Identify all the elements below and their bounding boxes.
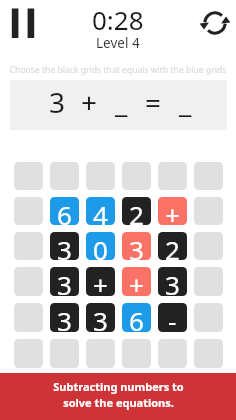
staticText: Choose the black grids that equals with … — [0, 64, 236, 76]
button[interactable] — [14, 197, 43, 225]
staticText: 3 — [57, 303, 72, 332]
button[interactable]: - — [158, 303, 187, 332]
button[interactable] — [122, 339, 151, 368]
staticText: - — [168, 303, 177, 332]
staticText: + — [93, 267, 108, 296]
staticText: + — [81, 83, 98, 121]
button[interactable] — [86, 339, 115, 368]
button[interactable] — [194, 162, 223, 190]
button[interactable] — [14, 267, 43, 296]
button[interactable]: 3 — [50, 232, 79, 260]
button[interactable]: 3 — [122, 232, 151, 260]
button[interactable]: 2 — [158, 232, 187, 260]
staticText: + — [165, 197, 180, 225]
button[interactable]: 0 — [86, 232, 115, 260]
staticText: 0 — [93, 232, 108, 260]
button[interactable] — [14, 303, 43, 332]
button[interactable]: Restart — [199, 7, 231, 39]
staticText: _ — [115, 83, 128, 121]
staticText: 3 — [57, 232, 72, 260]
staticText: = — [145, 83, 162, 121]
button[interactable] — [50, 162, 79, 190]
button[interactable]: Pause — [4, 4, 41, 41]
staticText: 3 — [165, 267, 180, 296]
button[interactable]: 2 — [122, 197, 151, 225]
staticText: 2 — [165, 232, 180, 260]
button[interactable] — [14, 339, 43, 368]
staticText: 0:28 — [92, 2, 144, 37]
button[interactable] — [158, 162, 187, 190]
button[interactable] — [14, 232, 43, 260]
button[interactable]: + — [158, 197, 187, 225]
staticText: 3 — [49, 83, 66, 121]
button[interactable] — [194, 197, 223, 225]
button[interactable]: 3 — [86, 303, 115, 332]
button[interactable] — [158, 339, 187, 368]
staticText: 3 — [93, 303, 108, 332]
staticText: 3 — [129, 232, 144, 260]
button[interactable] — [194, 339, 223, 368]
staticText: _ — [179, 83, 192, 121]
button[interactable] — [86, 162, 115, 190]
staticText: 6 — [129, 303, 144, 332]
button[interactable] — [194, 303, 223, 332]
button[interactable]: + — [86, 267, 115, 296]
button[interactable]: 3 — [50, 267, 79, 296]
staticText: 2 — [129, 197, 144, 225]
staticText: 3 — [57, 267, 72, 296]
staticText: 4 — [93, 197, 108, 225]
button[interactable]: + — [122, 267, 151, 296]
button[interactable] — [194, 267, 223, 296]
button[interactable]: 3 — [50, 303, 79, 332]
button[interactable] — [50, 339, 79, 368]
button[interactable] — [14, 162, 43, 190]
staticText: + — [129, 267, 144, 296]
button[interactable] — [122, 162, 151, 190]
staticText: Subtracting numbers to solve the equatio… — [53, 379, 184, 410]
button[interactable]: 3 — [158, 267, 187, 296]
button[interactable]: 6 — [122, 303, 151, 332]
staticText: Level 4 — [96, 34, 140, 52]
button[interactable] — [194, 232, 223, 260]
staticText: 6 — [57, 197, 72, 225]
button[interactable]: 6 — [50, 197, 79, 225]
button[interactable]: 4 — [86, 197, 115, 225]
